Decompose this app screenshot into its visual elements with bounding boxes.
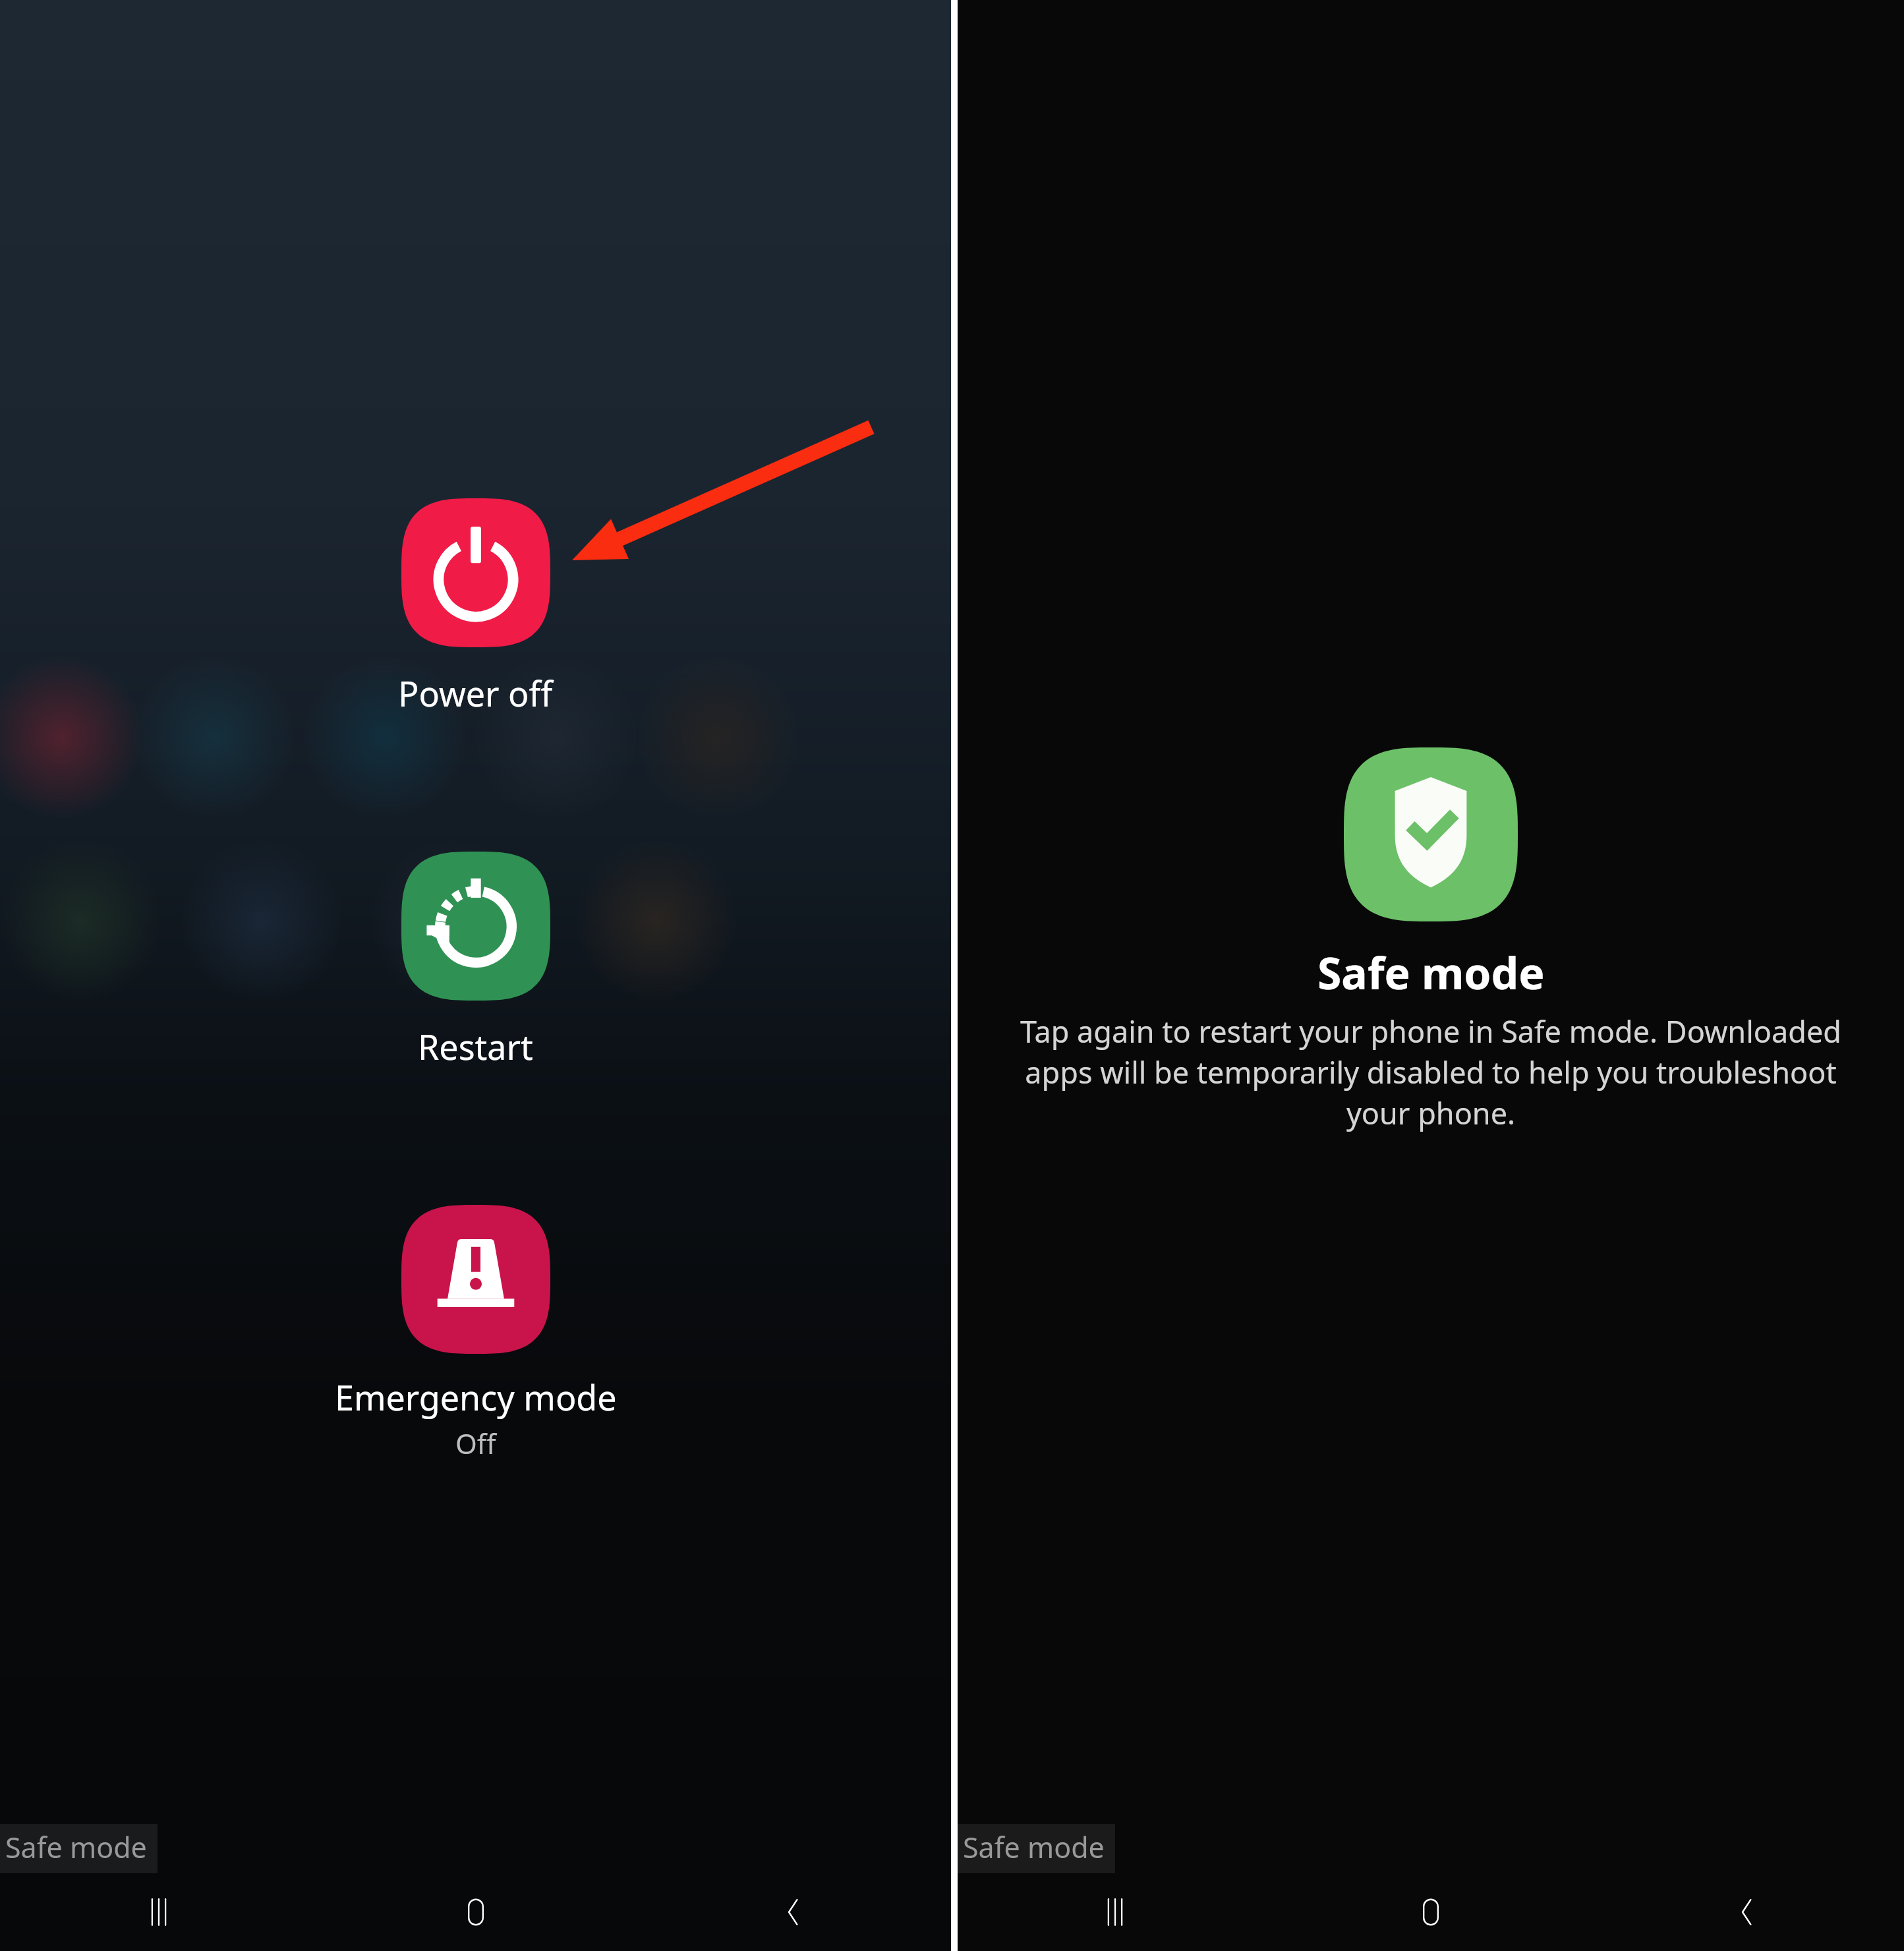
button[interactable]: Safe mode (1344, 747, 1518, 921)
staticText: Power off (398, 670, 553, 716)
staticText: Off (455, 1424, 496, 1462)
staticText: Emergency mode (335, 1374, 617, 1420)
button[interactable]: Back (634, 1873, 951, 1951)
button[interactable]: Restart (401, 852, 550, 1001)
button[interactable]: Recents (0, 1873, 317, 1951)
button[interactable]: Recents (958, 1873, 1273, 1951)
staticText: Restart (418, 1023, 533, 1070)
staticText: Tap again to restart your phone in Safe … (1002, 1011, 1859, 1133)
staticText: Safe mode (963, 1828, 1105, 1867)
button[interactable]: Home (317, 1873, 634, 1951)
button[interactable]: Emergency mode (401, 1205, 550, 1354)
button[interactable]: Home (1273, 1873, 1588, 1951)
button[interactable]: Back (1588, 1873, 1904, 1951)
staticText: Safe mode (1317, 943, 1545, 1002)
staticText: Safe mode (5, 1828, 147, 1867)
button[interactable]: Power off (401, 498, 550, 647)
